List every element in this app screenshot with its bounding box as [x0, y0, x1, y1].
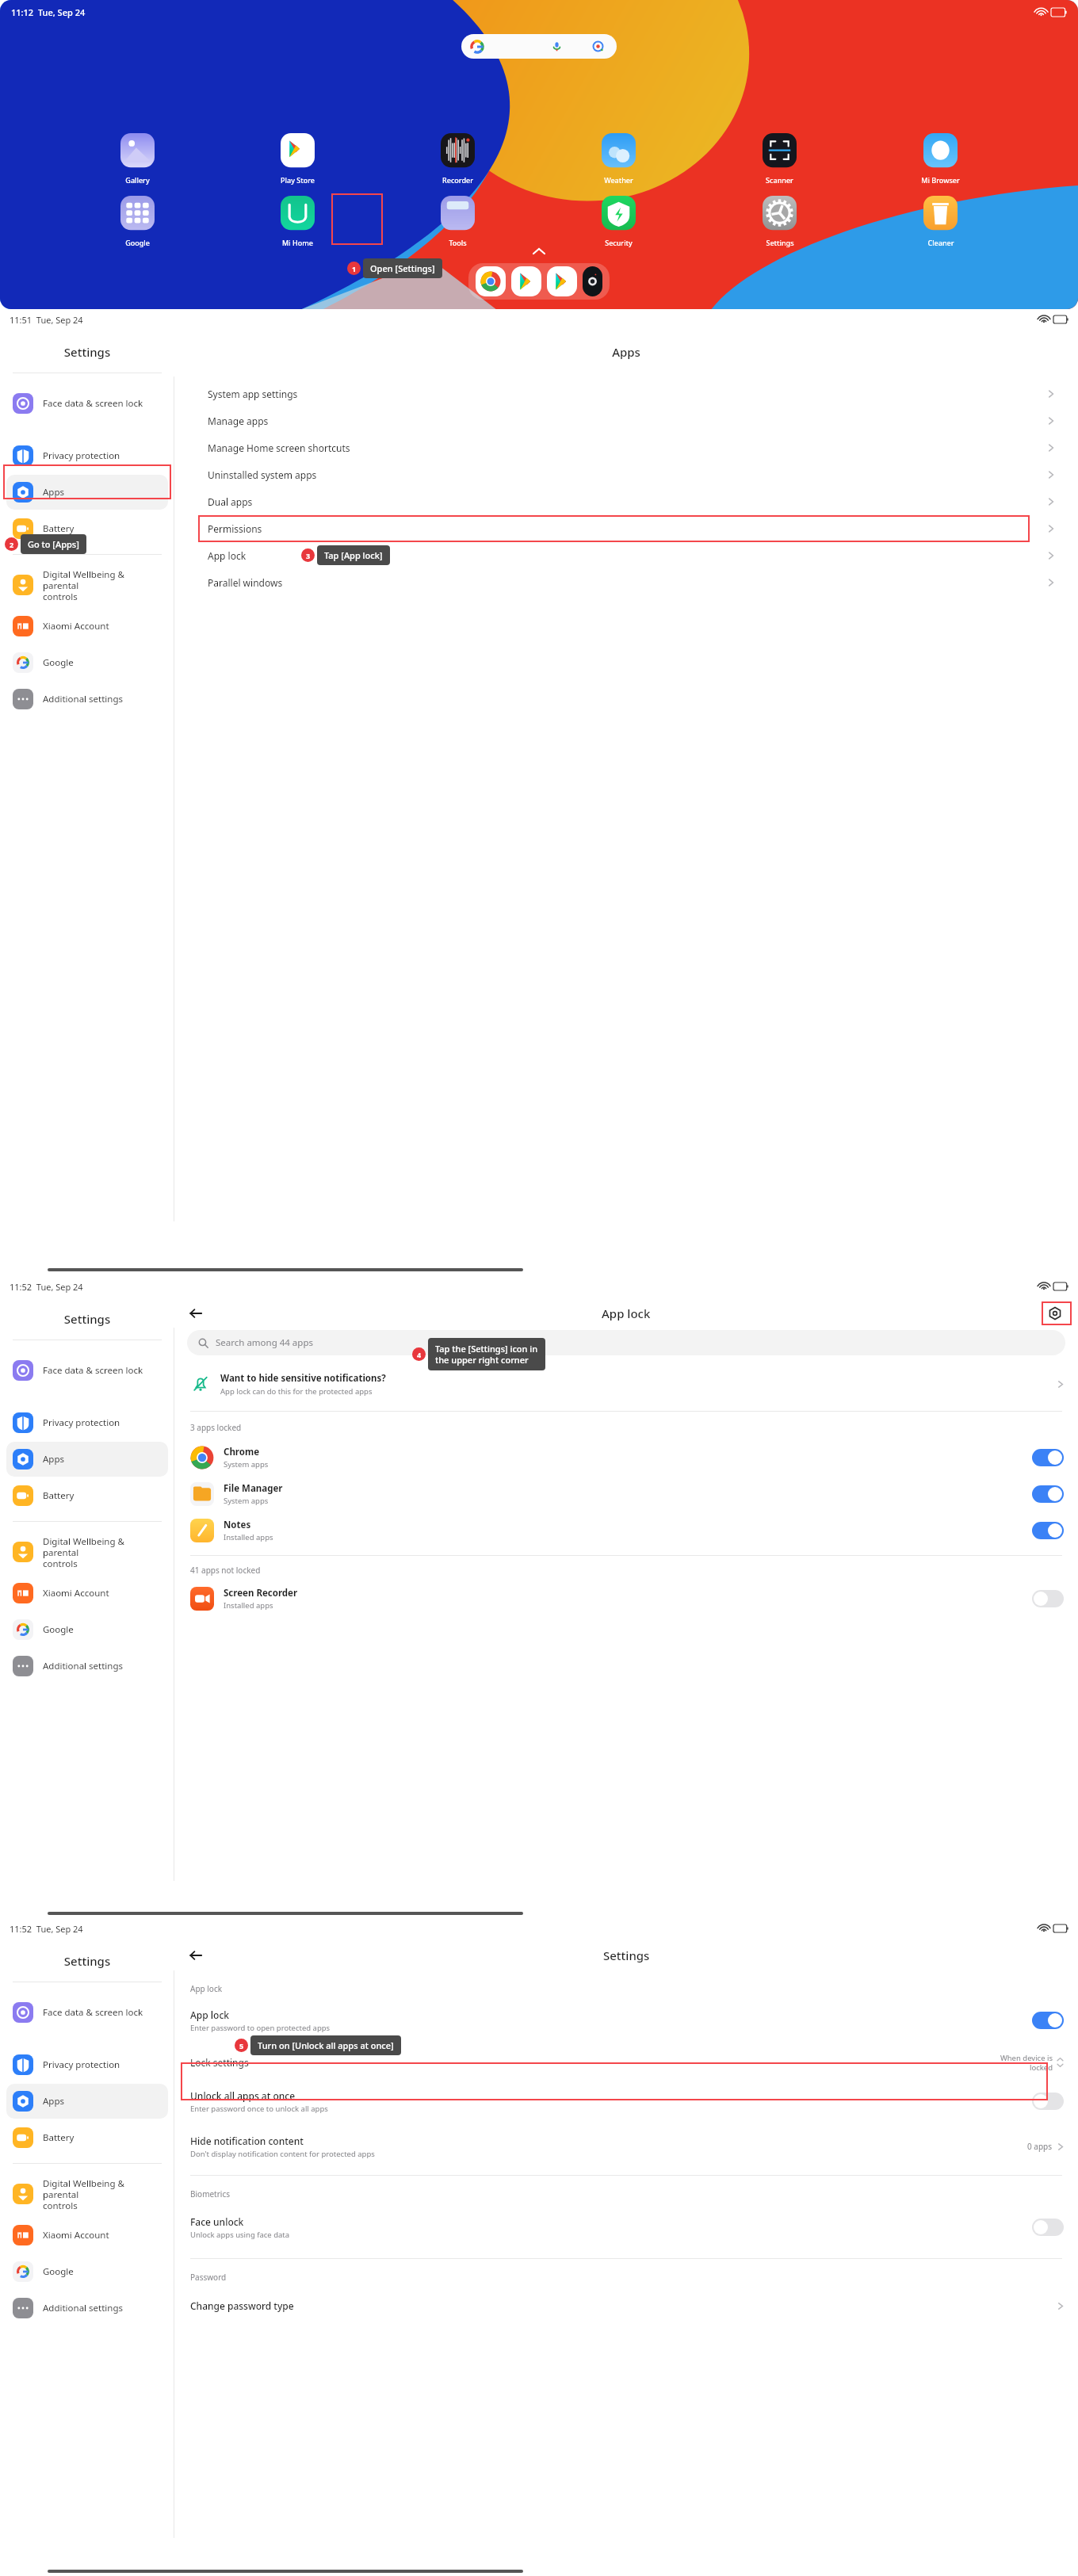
button[interactable]: Play Store	[217, 133, 377, 185]
staticText: Parallel windows	[208, 576, 283, 589]
button[interactable]: Permissions	[208, 515, 1054, 542]
staticText: Tap [App lock]	[324, 549, 383, 561]
button[interactable]: Toggle off	[1032, 1590, 1064, 1607]
staticText: Lock settings	[190, 2056, 249, 2069]
staticText: Privacy protection	[43, 1416, 120, 1429]
button[interactable]: Xiaomi Account	[6, 2218, 168, 2253]
staticText: System app settings	[208, 388, 298, 400]
staticText: 1	[352, 264, 357, 273]
staticText: 3	[306, 551, 311, 560]
button[interactable]: Google	[57, 196, 217, 247]
button[interactable]: Mi Home	[217, 196, 377, 247]
button[interactable]: Apps	[6, 475, 168, 510]
staticText: Google	[43, 656, 74, 669]
button[interactable]: Face unlock	[190, 2209, 1064, 2245]
staticText: Battery	[43, 522, 75, 535]
button[interactable]: Apps	[6, 1442, 168, 1477]
staticText: Scanner	[766, 175, 793, 185]
button[interactable]: Battery	[6, 511, 168, 546]
button[interactable]: Battery	[6, 2120, 168, 2155]
button[interactable]: Apps	[6, 2084, 168, 2119]
button[interactable]: Uninstalled system apps	[208, 461, 1054, 488]
button[interactable]: Dock app 4	[583, 266, 602, 296]
button[interactable]: Scanner	[699, 133, 860, 185]
button[interactable]: Google	[6, 2254, 168, 2289]
staticText: Search among 44 apps	[216, 1336, 313, 1349]
staticText: Battery	[43, 2131, 75, 2144]
button[interactable]: Screen Recorder	[190, 1580, 1064, 1617]
staticText: 4	[417, 1350, 422, 1359]
button[interactable]: Hide notification content	[190, 2131, 1064, 2162]
button[interactable]: Dock app 3	[547, 266, 577, 296]
button[interactable]: Manage apps	[208, 407, 1054, 434]
button[interactable]: Tools	[377, 196, 538, 247]
button[interactable]: Toggle on	[1032, 1485, 1064, 1503]
button[interactable]: Security	[538, 196, 699, 247]
button[interactable]: Digital Wellbeing & parental controls	[6, 563, 168, 607]
staticText: 0 apps	[1027, 2141, 1053, 2152]
button[interactable]: Notes	[190, 1512, 1064, 1549]
button[interactable]: Parallel windows	[208, 569, 1054, 596]
staticText: Digital Wellbeing & parental controls	[43, 1535, 162, 1569]
button[interactable]: Back	[185, 1303, 206, 1324]
button[interactable]: Xiaomi Account	[6, 609, 168, 644]
button[interactable]: Unlock all apps at once	[190, 2083, 1064, 2119]
button[interactable]: Search among 44 apps	[187, 1330, 1065, 1355]
button[interactable]: File Manager	[190, 1476, 1064, 1512]
staticText: Uninstalled system apps	[208, 468, 317, 481]
button[interactable]: Change password type	[190, 2292, 1064, 2319]
button[interactable]: Settings	[699, 196, 860, 247]
button[interactable]: Cleaner	[860, 196, 1021, 247]
button[interactable]: Additional settings	[6, 1649, 168, 1684]
button[interactable]: Face data & screen lock	[6, 1353, 168, 1388]
button[interactable]: Toggle off	[1032, 2219, 1064, 2236]
button[interactable]: Chrome	[190, 1439, 1064, 1476]
button[interactable]: Digital Wellbeing & parental controls	[6, 2172, 168, 2216]
button[interactable]: Back	[185, 1945, 206, 1966]
button[interactable]: App lock	[190, 2002, 1064, 2039]
button[interactable]: Additional settings	[6, 682, 168, 717]
button[interactable]: Lock settings	[190, 2047, 1064, 2078]
staticText: Enter password once to unlock all apps	[190, 2104, 328, 2114]
button[interactable]: Mi Browser	[860, 133, 1021, 185]
button[interactable]: Xiaomi Account	[6, 1576, 168, 1611]
button[interactable]: Face data & screen lock	[6, 386, 168, 421]
button[interactable]: Recorder	[377, 133, 538, 185]
button[interactable]: Dock app 1	[476, 266, 506, 296]
staticText: Security	[605, 238, 633, 247]
button[interactable]: Privacy protection	[6, 438, 168, 473]
button[interactable]: Toggle on	[1032, 1449, 1064, 1466]
staticText: Installed apps	[224, 1532, 273, 1542]
button[interactable]: Want to hide sensitive notifications?	[190, 1366, 1064, 1401]
staticText: Face data & screen lock	[43, 2006, 143, 2019]
button[interactable]: Settings	[1045, 1303, 1065, 1324]
button[interactable]: System app settings	[208, 380, 1054, 407]
button[interactable]: Google	[6, 1612, 168, 1647]
button[interactable]: Dock app 2	[511, 266, 541, 296]
button[interactable]: Gallery	[57, 133, 217, 185]
staticText: Apps	[174, 344, 1078, 360]
button[interactable]: Google search	[461, 34, 617, 59]
button[interactable]: Weather	[538, 133, 699, 185]
staticText: App lock	[602, 1305, 651, 1321]
button[interactable]: Privacy protection	[6, 1405, 168, 1440]
button[interactable]: App lock	[208, 542, 1054, 569]
button[interactable]: Face data & screen lock	[6, 1995, 168, 2030]
staticText: Digital Wellbeing & parental controls	[43, 568, 162, 602]
button[interactable]: Privacy protection	[6, 2047, 168, 2082]
button[interactable]: Toggle off	[1032, 2093, 1064, 2110]
staticText: Apps	[43, 1453, 65, 1466]
staticText: App lock	[190, 1983, 223, 1994]
staticText: Additional settings	[43, 2302, 124, 2314]
staticText: Digital Wellbeing & parental controls	[43, 2177, 162, 2211]
button[interactable]: Dual apps	[208, 488, 1054, 515]
button[interactable]: Google	[6, 645, 168, 680]
button[interactable]: Digital Wellbeing & parental controls	[6, 1530, 168, 1574]
staticText: Google	[125, 238, 150, 247]
button[interactable]: Toggle on	[1032, 2012, 1064, 2029]
button[interactable]: Toggle on	[1032, 1522, 1064, 1539]
button[interactable]: Manage Home screen shortcuts	[208, 434, 1054, 461]
button[interactable]: Battery	[6, 1478, 168, 1513]
staticText: 41 apps not locked	[190, 1565, 261, 1576]
button[interactable]: Additional settings	[6, 2291, 168, 2326]
